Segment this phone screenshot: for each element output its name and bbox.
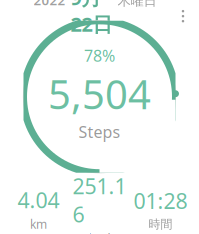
staticText: 9月 22日 — [70, 0, 112, 37]
button[interactable]: More options — [173, 5, 193, 27]
staticText: Steps — [78, 121, 120, 142]
button[interactable]: 4.04 — [8, 184, 69, 234]
staticText: 木曜日 — [117, 0, 156, 9]
staticText: kcal — [88, 230, 110, 234]
staticText: 時間 — [148, 217, 172, 231]
staticText: 2022 — [33, 0, 65, 9]
button[interactable]: 251.16 — [69, 170, 130, 234]
staticText: 5,504 — [48, 67, 151, 120]
staticText: 4.04 — [17, 186, 59, 214]
staticText: 251.16 — [72, 172, 126, 228]
button[interactable]: 01:28 — [130, 184, 191, 234]
staticText: km — [30, 216, 47, 232]
staticText: 01:28 — [133, 186, 187, 215]
staticText: 78% — [84, 45, 115, 66]
